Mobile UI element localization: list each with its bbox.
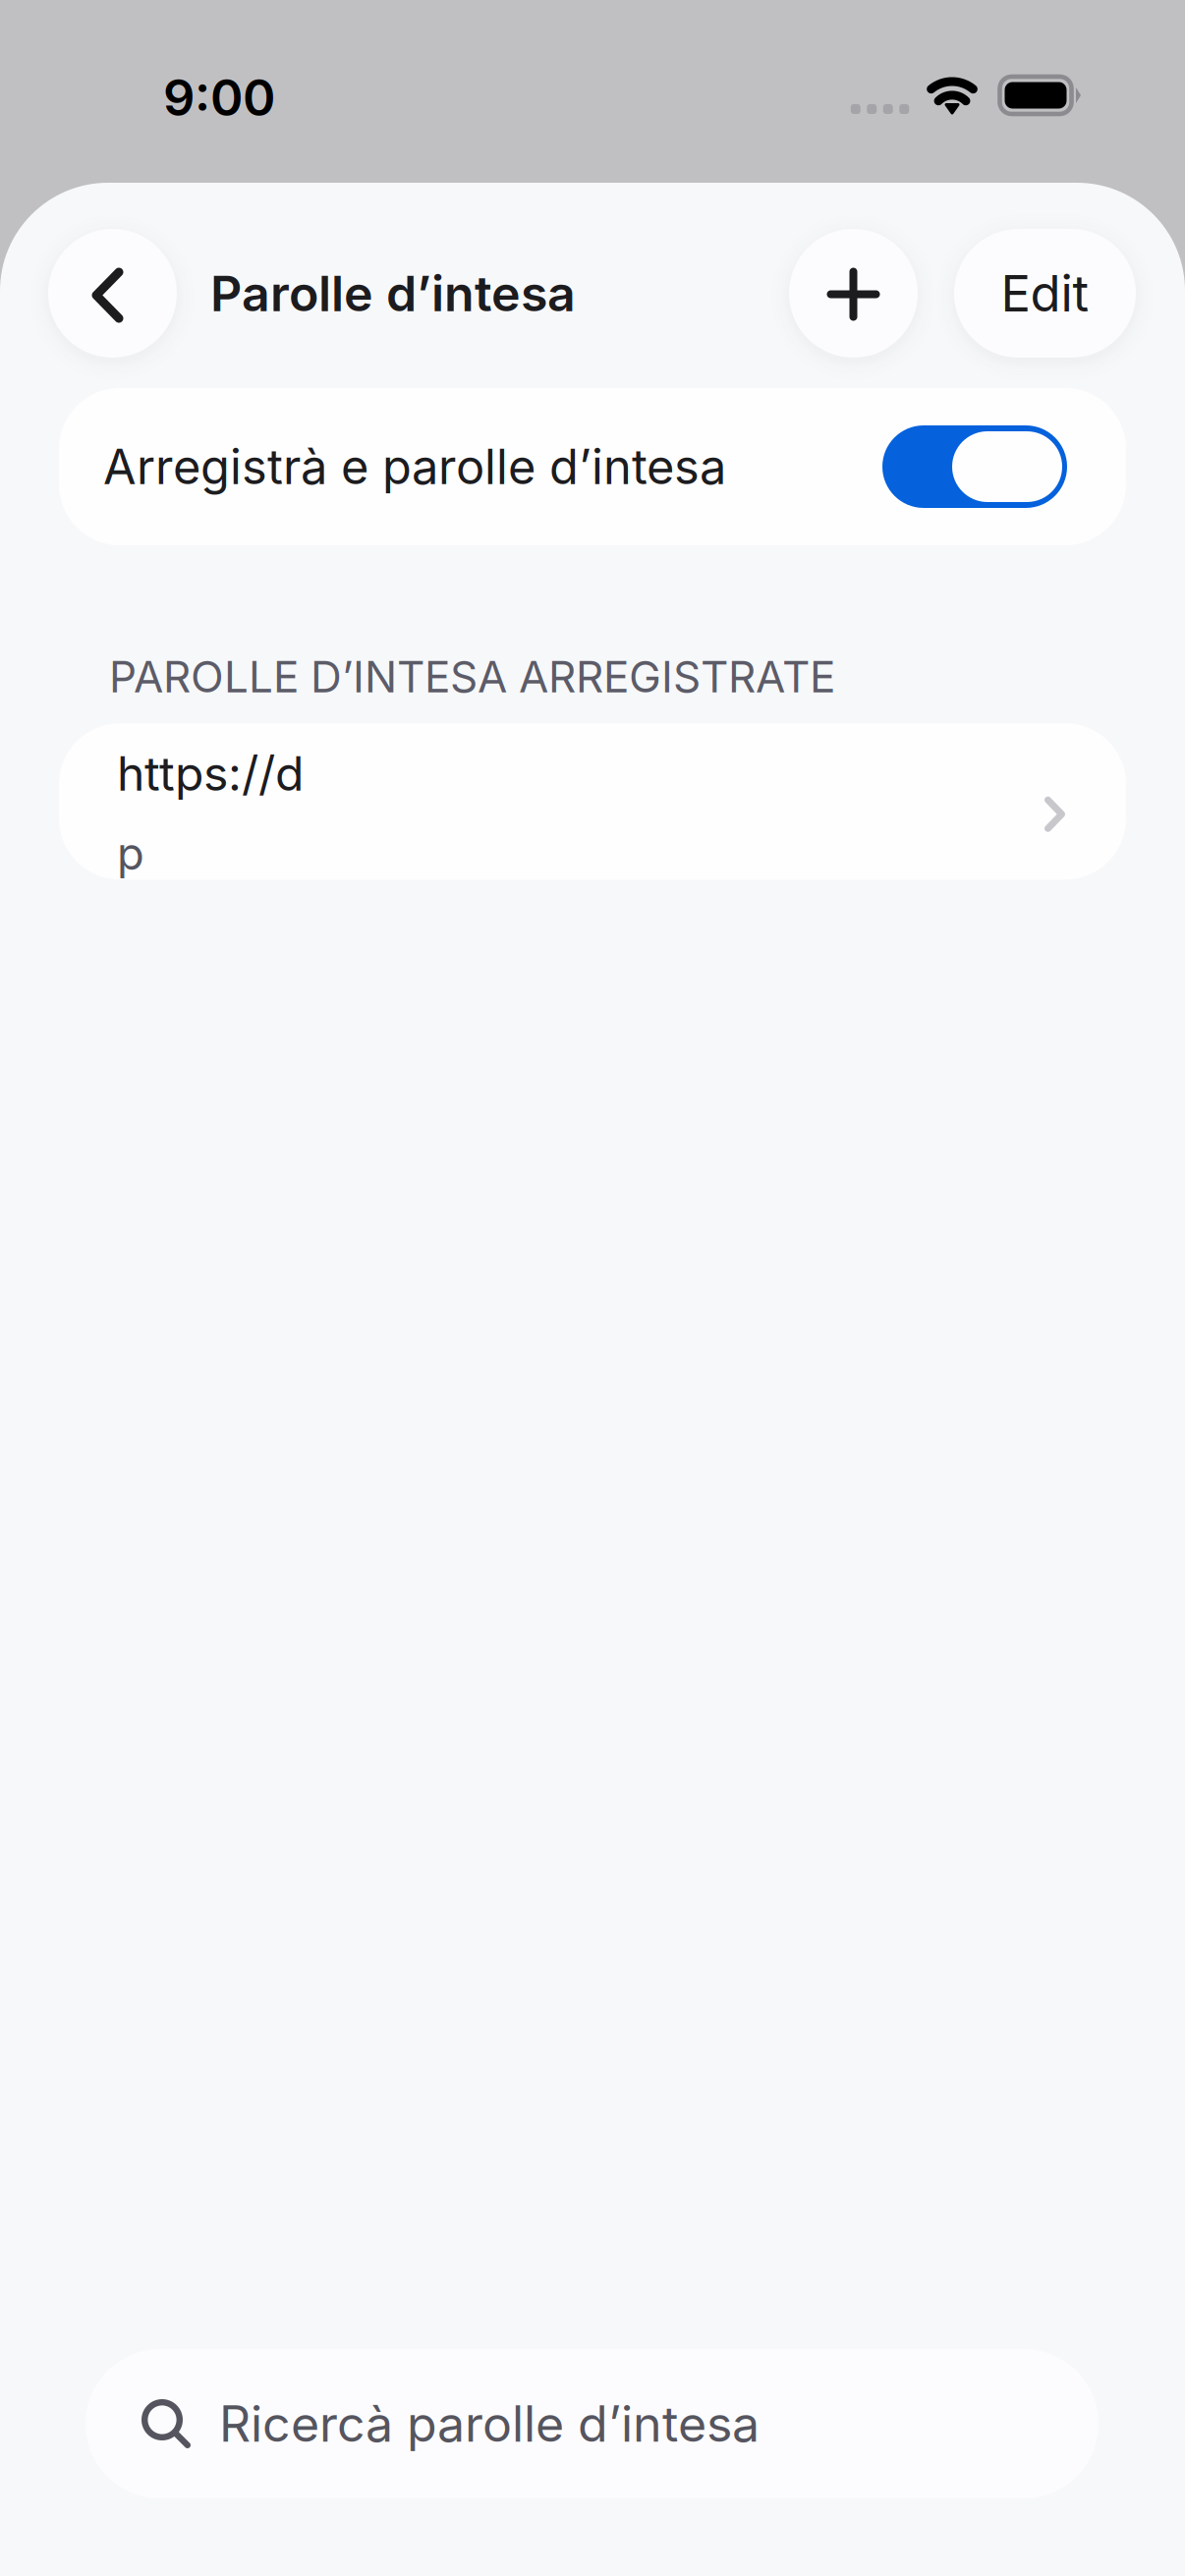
button[interactable]: Add	[789, 229, 918, 358]
staticText: Arregistrà e parolle d’intesa	[103, 438, 726, 496]
button[interactable]: Ricercà parolle d’intesa	[85, 2349, 1099, 2498]
staticText: Edit	[1001, 263, 1089, 323]
button[interactable]: Arregistrà e parolle d’intesa	[59, 388, 1126, 545]
staticText: https://d	[117, 745, 304, 802]
staticText: Parolle d’intesa	[210, 264, 576, 323]
button[interactable]: Edit	[954, 229, 1136, 358]
staticText: Ricercà parolle d’intesa	[219, 2394, 760, 2453]
button[interactable]: Back	[48, 229, 177, 358]
staticText: p	[117, 827, 144, 881]
staticText: PAROLLE D’INTESA ARREGISTRATE	[109, 650, 835, 703]
staticText: 9:00	[163, 67, 275, 128]
button[interactable]: https://d	[59, 723, 1126, 879]
